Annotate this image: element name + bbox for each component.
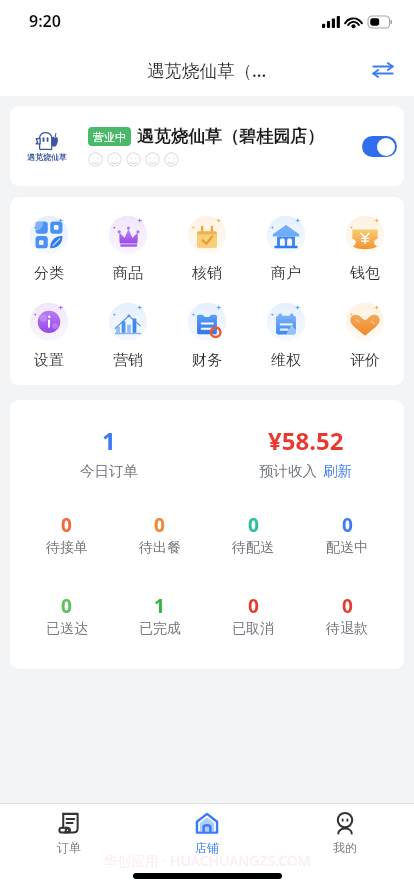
staticText: 遇苋烧仙草（... xyxy=(147,58,267,82)
button[interactable]: 商户 xyxy=(246,214,325,283)
staticText: 待退款 xyxy=(326,620,368,638)
staticText: 设置 xyxy=(34,351,64,370)
staticText: 配送中 xyxy=(326,539,368,557)
staticText: 0 xyxy=(61,512,72,538)
button[interactable]: 0 xyxy=(20,512,113,557)
staticText: 遇苋烧仙草 xyxy=(27,152,67,162)
staticText: 0 xyxy=(248,593,259,619)
staticText: 0 xyxy=(342,593,353,619)
button[interactable]: 财务 xyxy=(167,301,246,370)
staticText: 维权 xyxy=(271,351,301,370)
button[interactable]: 刷新 xyxy=(323,462,352,480)
button[interactable]: 0 xyxy=(206,593,300,638)
button[interactable]: 0 xyxy=(20,593,113,638)
staticText: 商户 xyxy=(271,264,301,283)
button[interactable]: 分类 xyxy=(10,214,88,283)
staticText: 1 xyxy=(102,424,116,457)
button[interactable]: 0 xyxy=(300,593,394,638)
button[interactable]: 商品 xyxy=(88,214,167,283)
staticText: 0 xyxy=(248,512,259,538)
button[interactable]: 遇苋烧仙草 xyxy=(10,106,404,186)
staticText: 钱包 xyxy=(350,264,380,283)
staticText: 华创应用 · HUACHUANGZS.COM xyxy=(103,851,311,870)
button[interactable]: 营业状态开关 xyxy=(362,136,397,157)
button[interactable]: 营销 xyxy=(88,301,167,370)
button[interactable]: 我的 xyxy=(276,811,414,855)
button[interactable]: 1 xyxy=(10,424,207,480)
staticText: 核销 xyxy=(192,264,222,283)
staticText: ¥58.52 xyxy=(268,424,344,457)
staticText: 待配送 xyxy=(232,539,274,557)
staticText: 财务 xyxy=(192,351,222,370)
staticText: 店铺 xyxy=(195,840,219,855)
button[interactable]: 评价 xyxy=(325,301,404,370)
staticText: 营销 xyxy=(113,351,143,370)
button[interactable]: 钱包 xyxy=(325,214,404,283)
staticText: 已送达 xyxy=(46,620,88,638)
staticText: 评价 xyxy=(350,351,380,370)
button[interactable]: ¥58.52 xyxy=(207,424,404,480)
staticText: 今日订单 xyxy=(80,462,138,480)
staticText: 待出餐 xyxy=(139,539,181,557)
staticText: 0 xyxy=(61,593,72,619)
staticText: 遇苋烧仙草（碧桂园店） xyxy=(137,126,324,147)
staticText: 我的 xyxy=(333,840,357,855)
staticText: 1 xyxy=(154,593,165,619)
button[interactable]: 切换门店 xyxy=(366,53,400,87)
staticText: 营业中 xyxy=(93,130,126,144)
staticText: 0 xyxy=(154,512,165,538)
button[interactable]: 维权 xyxy=(246,301,325,370)
staticText: 0 xyxy=(342,512,353,538)
staticText: 9:20 xyxy=(29,10,61,32)
button[interactable]: 订单 xyxy=(0,811,138,855)
button[interactable]: 0 xyxy=(206,512,300,557)
staticText: 待接单 xyxy=(46,539,88,557)
button[interactable]: 1 xyxy=(113,593,206,638)
staticText: 已完成 xyxy=(139,620,181,638)
staticText: 已取消 xyxy=(232,620,274,638)
staticText: 预计收入 xyxy=(259,462,317,480)
staticText: 订单 xyxy=(57,840,81,855)
button[interactable]: 核销 xyxy=(167,214,246,283)
button[interactable]: 0 xyxy=(300,512,394,557)
staticText: 商品 xyxy=(113,264,143,283)
button[interactable]: 0 xyxy=(113,512,206,557)
button[interactable]: 店铺 xyxy=(138,811,276,855)
button[interactable]: 设置 xyxy=(10,301,88,370)
staticText: 分类 xyxy=(34,264,64,283)
